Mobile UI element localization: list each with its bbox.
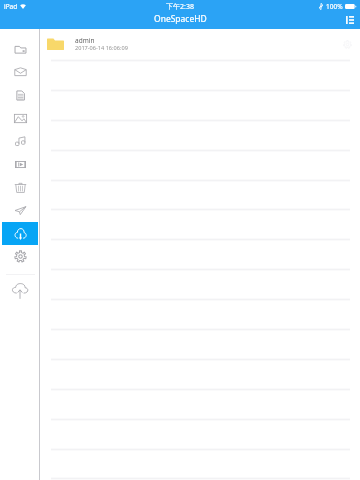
button[interactable]: video [2,153,38,176]
button[interactable]: clouddown [2,222,38,245]
staticText: 2017-06-14 16:06:09 [75,44,128,52]
button[interactable]: admin [40,29,360,59]
button[interactable] [40,449,360,479]
staticText: iPad [4,2,18,11]
button[interactable]: trash [2,176,38,199]
staticText: 100% [326,2,343,11]
button[interactable]: music [2,130,38,153]
button[interactable]: Upload [0,280,40,304]
button[interactable]: doc [2,84,38,107]
staticText: 下午2:38 [166,2,194,12]
staticText: admin [75,36,95,45]
button[interactable]: send [2,199,38,222]
button[interactable]: List view [345,15,355,25]
button[interactable]: mail [2,61,38,84]
button[interactable]: folder [2,38,38,61]
button[interactable]: image [2,107,38,130]
staticText: OneSpaceHD [154,13,207,25]
button[interactable]: settings [2,245,38,268]
